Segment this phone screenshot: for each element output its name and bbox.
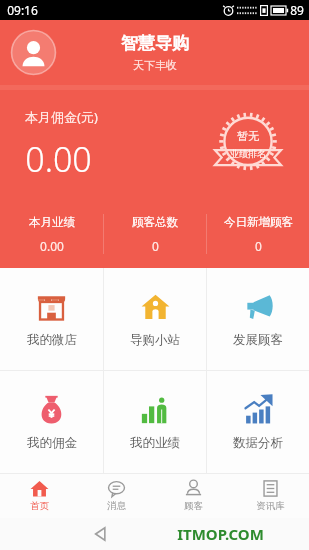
button[interactable]: 发展顾客 — [207, 268, 309, 370]
button[interactable]: 资讯库 — [232, 473, 309, 518]
button[interactable]: 本月业绩 — [0, 200, 103, 268]
staticText: 暂无 — [237, 129, 259, 143]
button[interactable]: 我的佣金 — [0, 371, 103, 473]
button[interactable]: 顾客 — [155, 473, 232, 518]
button[interactable]: 首页 — [0, 473, 78, 518]
button[interactable]: 消息 — [78, 473, 155, 518]
staticText: 今日新增顾客 — [224, 215, 293, 229]
staticText: 0 — [152, 238, 159, 254]
button[interactable]: 我的业绩 — [104, 371, 206, 473]
staticText: 我的佣金 — [27, 435, 77, 451]
staticText: ITMOP.COM — [177, 524, 264, 544]
staticText: 资讯库 — [256, 500, 285, 512]
button[interactable]: 我的微店 — [0, 268, 103, 370]
staticText: 顾客总数 — [132, 215, 178, 229]
staticText: 我的业绩 — [130, 435, 180, 451]
staticText: 09:16 — [7, 2, 38, 18]
button[interactable]: Profile — [10, 29, 57, 76]
staticText: 导购小站 — [130, 332, 180, 348]
button[interactable]: 导购小站 — [104, 268, 206, 370]
staticText: 本月业绩 — [29, 215, 75, 229]
button[interactable]: 顾客总数 — [104, 200, 206, 268]
button[interactable]: 业绩排名 — [212, 109, 284, 181]
staticText: 天下丰收 — [133, 58, 177, 72]
staticText: 智慧导购 — [121, 33, 189, 54]
staticText: 0.00 — [25, 136, 92, 182]
staticText: 本月佣金(元) — [25, 108, 98, 126]
button[interactable]: Back — [89, 523, 111, 545]
staticText: 顾客 — [184, 500, 203, 512]
button[interactable]: 今日新增顾客 — [207, 200, 309, 268]
staticText: 0.00 — [40, 238, 64, 254]
staticText: 首页 — [30, 500, 49, 512]
staticText: 我的微店 — [27, 332, 77, 348]
staticText: 业绩排名 — [230, 148, 266, 159]
staticText: 0 — [255, 238, 262, 254]
staticText: 消息 — [107, 500, 126, 512]
staticText: 89 — [290, 2, 304, 18]
button[interactable]: 数据分析 — [207, 371, 309, 473]
staticText: 发展顾客 — [233, 332, 283, 348]
staticText: 数据分析 — [233, 435, 283, 451]
